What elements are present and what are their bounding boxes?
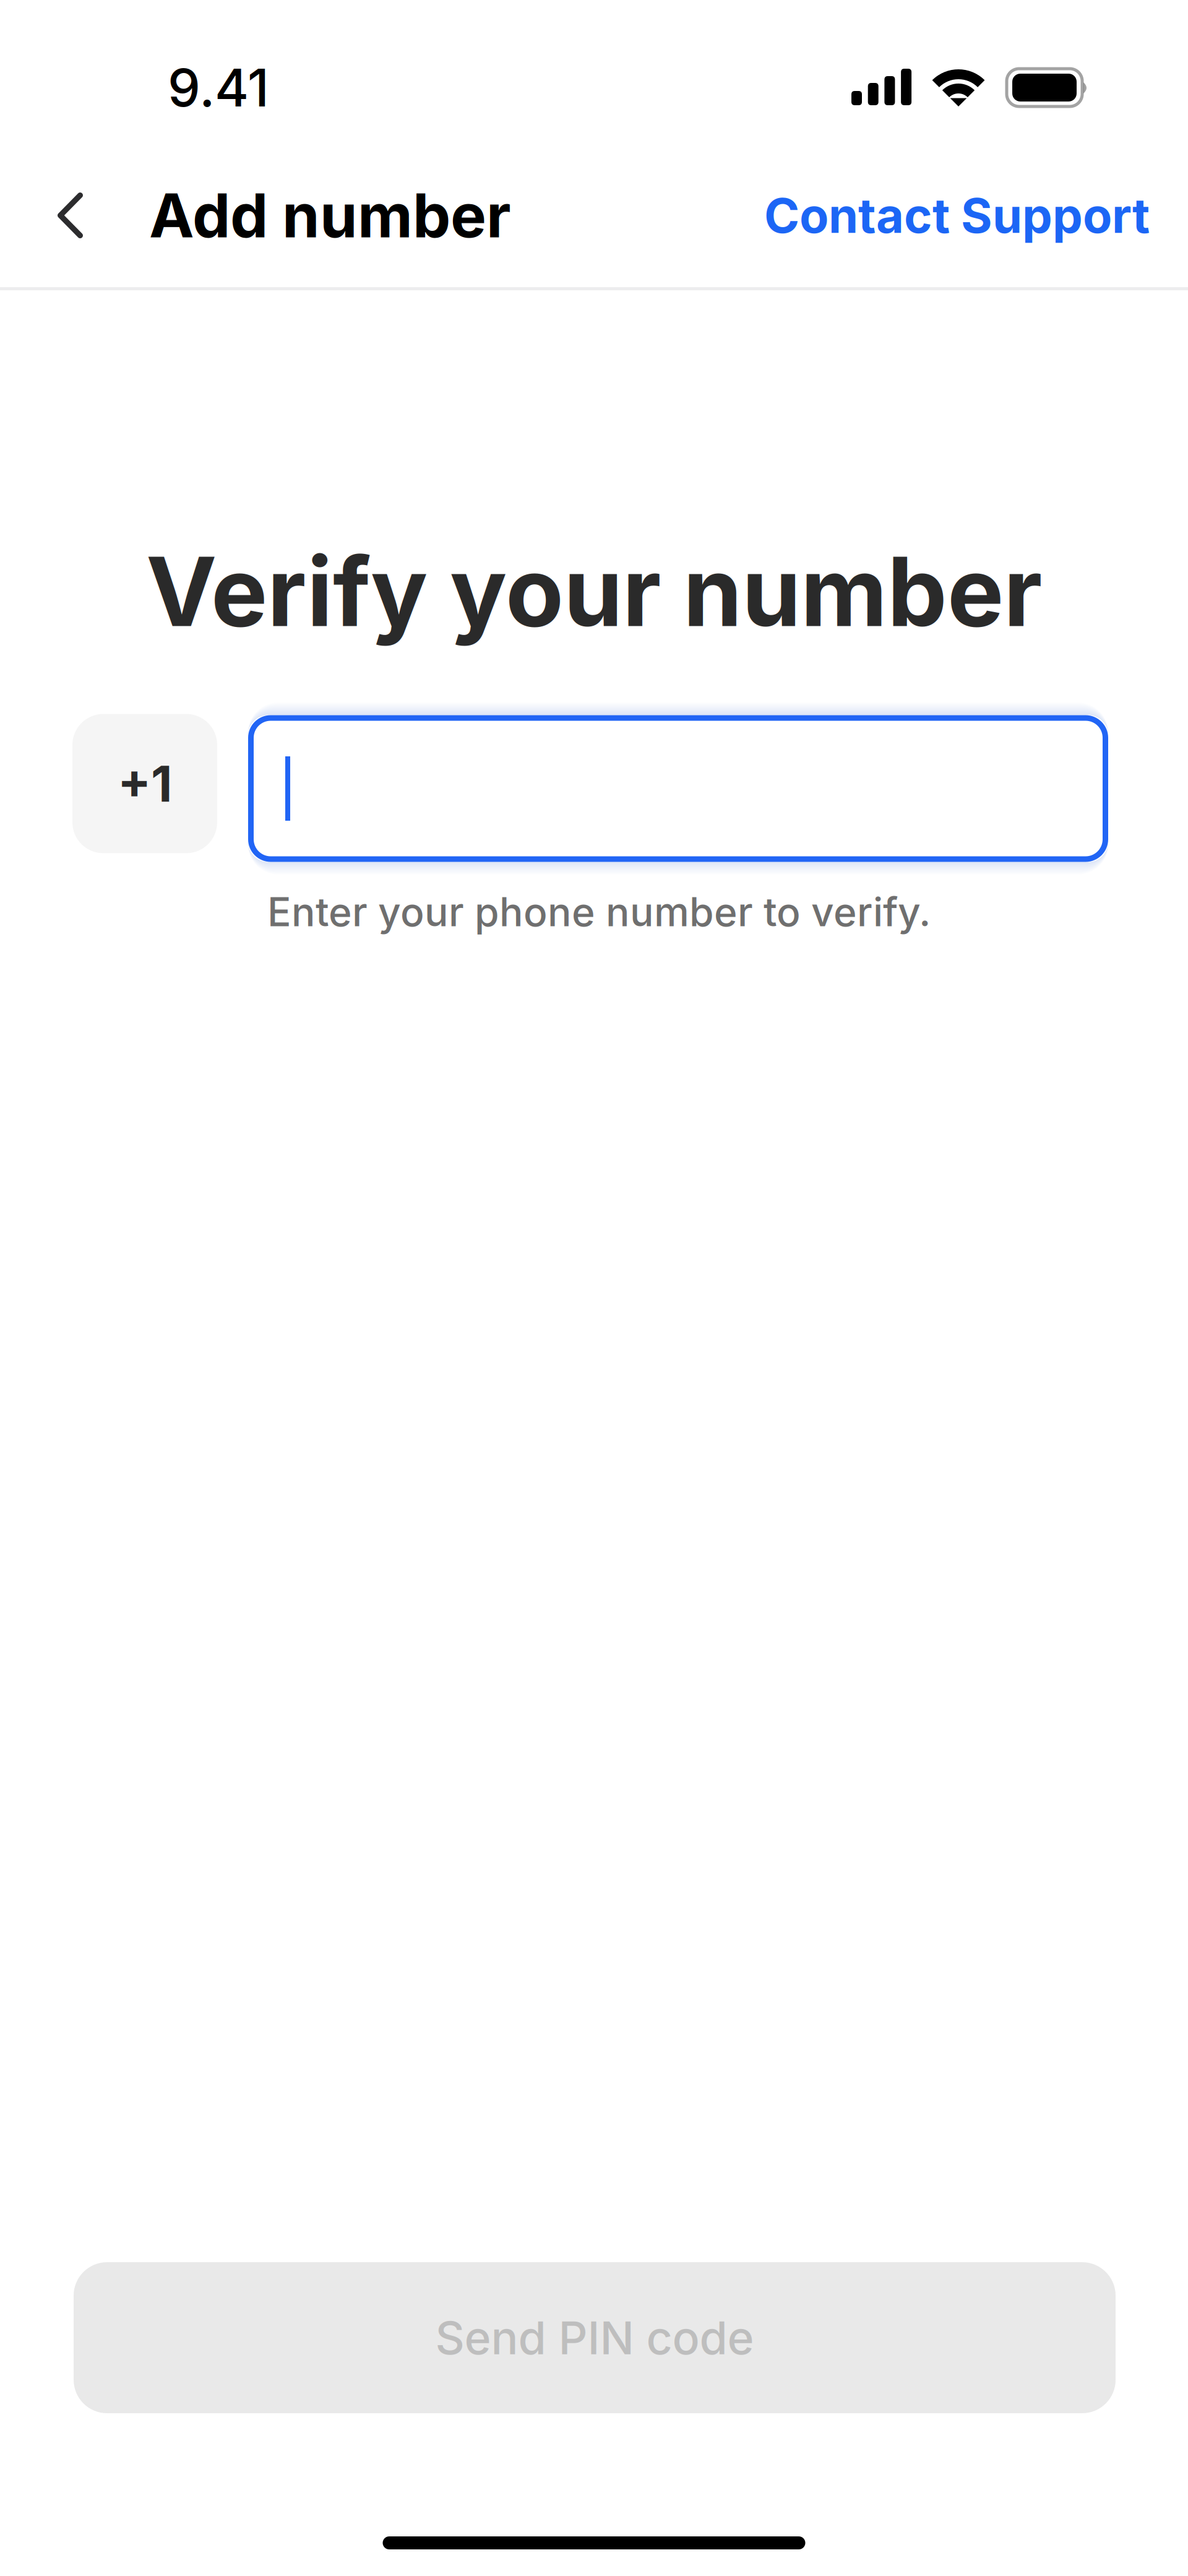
- staticText: Add number: [149, 179, 511, 252]
- staticText: 9.41: [168, 56, 269, 119]
- staticText: +1: [118, 754, 172, 814]
- button[interactable]: Send PIN code: [74, 2262, 1116, 2413]
- staticText: Contact Support: [764, 186, 1150, 244]
- staticText: Verify your number: [146, 534, 1042, 649]
- staticText: Enter your phone number to verify.: [267, 888, 931, 936]
- staticText: Send PIN code: [435, 2310, 754, 2365]
- button[interactable]: +1: [72, 714, 217, 853]
- button[interactable]: Contact Support: [764, 179, 1150, 252]
- button[interactable]: Back: [49, 179, 92, 252]
